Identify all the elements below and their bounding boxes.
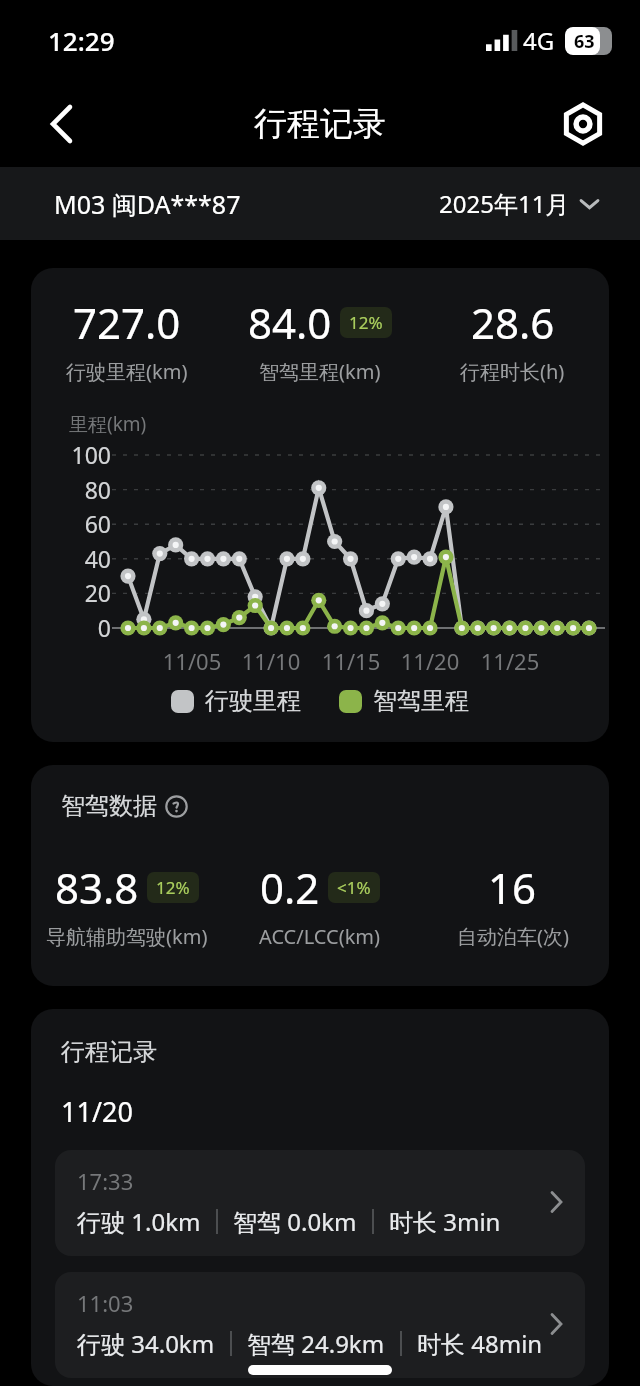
staticText: 80 (37, 474, 111, 505)
staticText: 11/20 (390, 646, 470, 676)
staticText: 自动泊车(次) (457, 923, 569, 950)
staticText: 智驾 0.0km (233, 1205, 357, 1238)
staticText: M03 闽DA***87 (54, 187, 241, 221)
staticText: 12% (349, 311, 383, 334)
staticText: 导航辅助驾驶(km) (46, 923, 208, 950)
staticText: 行驶 1.0km (77, 1205, 201, 1238)
button[interactable]: 2025年11月 (435, 181, 604, 226)
staticText: 727.0 (73, 294, 181, 351)
staticText: 11/25 (470, 646, 550, 676)
staticText: 11/15 (311, 646, 391, 676)
staticText: 行驶里程 (205, 686, 301, 716)
staticText: ACC/LCC(km) (259, 923, 381, 950)
button[interactable]: 17:33 (55, 1150, 585, 1256)
staticText: 28.6 (471, 294, 555, 351)
staticText: 60 (37, 508, 111, 539)
staticText: 0 (37, 612, 111, 643)
button[interactable]: Back (28, 93, 90, 155)
staticText: 11:03 (77, 1288, 134, 1318)
staticText: 63 (574, 29, 595, 54)
staticText: 20 (37, 577, 111, 608)
staticText: 84.0 (248, 294, 332, 351)
staticText: 行驶 34.0km (77, 1327, 215, 1360)
staticText: 智驾里程 (373, 686, 469, 716)
staticText: 里程(km) (69, 411, 147, 437)
staticText: <1% (337, 876, 371, 899)
staticText: 100 (37, 439, 111, 470)
staticText: 行程记录 (61, 1037, 157, 1067)
button[interactable]: 11:03 (55, 1272, 585, 1378)
staticText: 40 (37, 543, 111, 574)
staticText: 4G (523, 24, 555, 57)
staticText: 0.2 (260, 859, 320, 916)
staticText: 12% (156, 876, 190, 899)
staticText: 11/05 (152, 646, 232, 676)
staticText: 16 (488, 859, 537, 916)
staticText: 行程记录 (254, 103, 386, 145)
staticText: 智驾 24.9km (247, 1327, 385, 1360)
staticText: 行驶里程(km) (66, 358, 188, 385)
staticText: 83.8 (55, 859, 139, 916)
button[interactable]: 智驾数据 (61, 791, 188, 821)
staticText: 12:29 (48, 23, 115, 58)
staticText: 时长 48min (417, 1327, 543, 1360)
staticText: 时长 3min (389, 1205, 501, 1238)
staticText: 智驾里程(km) (259, 358, 381, 385)
staticText: 17:33 (77, 1166, 134, 1196)
staticText: 11/10 (231, 646, 311, 676)
staticText: 2025年11月 (439, 187, 570, 220)
staticText: 智驾数据 (61, 791, 157, 821)
button[interactable]: Settings (552, 93, 614, 155)
staticText: 11/20 (61, 1093, 133, 1130)
staticText: 行程时长(h) (460, 358, 565, 385)
